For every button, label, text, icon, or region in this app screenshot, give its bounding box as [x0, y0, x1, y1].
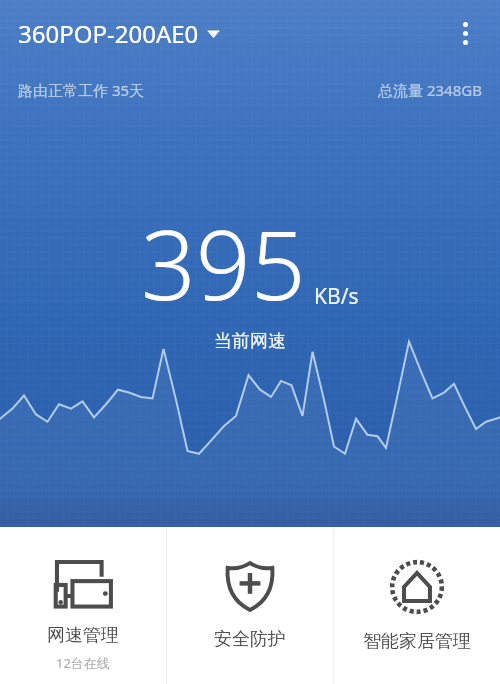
staticText: 路由正常工作 35天	[18, 80, 145, 100]
button[interactable]: More options	[444, 12, 486, 54]
staticText: 智能家居管理	[363, 630, 471, 653]
staticText: 总流量 2348GB	[378, 80, 482, 100]
staticText: 网速管理	[47, 624, 119, 647]
button[interactable]: 安全防护	[167, 527, 333, 684]
button[interactable]: 网速管理	[0, 527, 166, 684]
button[interactable]: 360POP-200AE0	[18, 17, 226, 50]
button[interactable]: 智能家居管理	[334, 527, 500, 684]
staticText: 360POP-200AE0	[18, 17, 199, 50]
staticText: 395	[141, 197, 306, 328]
staticText: 安全防护	[214, 628, 286, 651]
staticText: KB/s	[314, 282, 359, 311]
staticText: 12台在线	[56, 654, 110, 672]
staticText: 当前网速	[214, 330, 286, 353]
